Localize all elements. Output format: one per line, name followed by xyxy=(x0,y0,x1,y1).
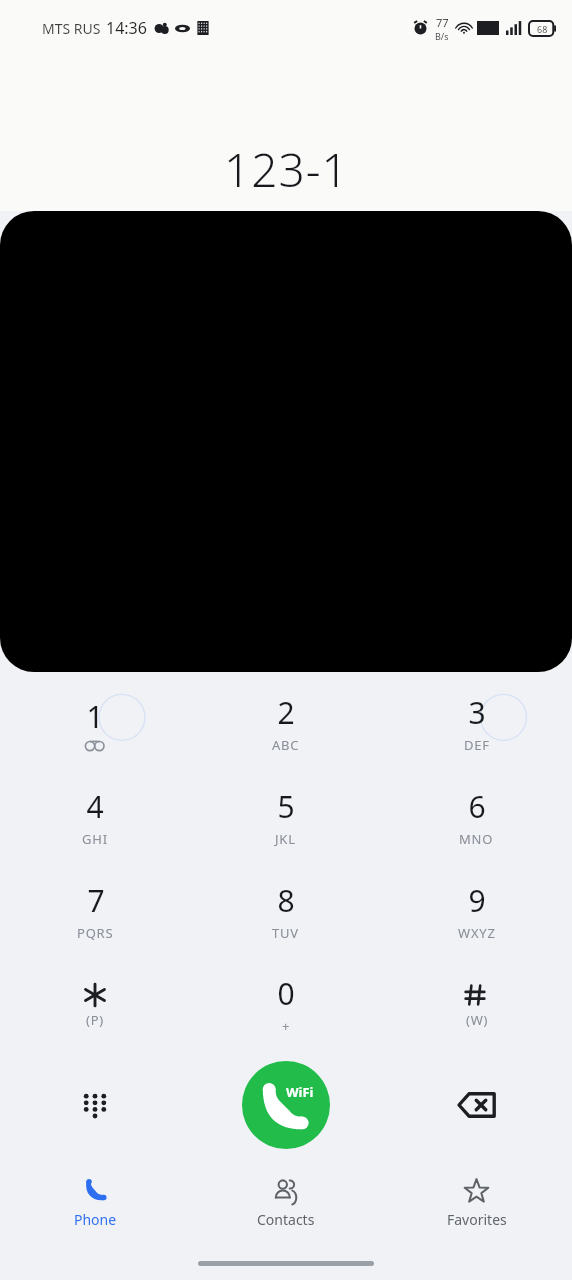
staticText: Phone xyxy=(74,1210,117,1229)
button[interactable]: 6 xyxy=(381,770,572,864)
button[interactable]: 9 xyxy=(381,864,572,957)
staticText: 7 xyxy=(87,880,105,921)
staticText: WiFi xyxy=(286,1083,314,1101)
button[interactable]: 2 xyxy=(190,676,381,770)
staticText: 0 xyxy=(277,973,295,1014)
button[interactable]: 1 xyxy=(0,676,190,770)
button[interactable]: (W) xyxy=(381,957,572,1050)
button[interactable]: 3 xyxy=(381,676,572,770)
staticText: TUV xyxy=(272,924,299,942)
staticText: GHI xyxy=(82,830,108,848)
staticText: + xyxy=(282,1017,291,1035)
button[interactable]: (P) xyxy=(0,957,190,1050)
staticText: 8 xyxy=(277,880,295,921)
staticText: MTS RUS xyxy=(42,19,101,38)
staticText: 5 xyxy=(277,786,295,827)
button[interactable]: Dialpad xyxy=(0,1050,190,1160)
button[interactable]: 7 xyxy=(0,864,190,957)
staticText: 14:36 xyxy=(106,17,147,39)
staticText: Favorites xyxy=(447,1210,507,1229)
button[interactable]: Phone xyxy=(0,1160,190,1246)
button[interactable]: 8 xyxy=(190,864,381,957)
staticText: 1 xyxy=(86,696,104,737)
button[interactable]: Favorites xyxy=(381,1160,572,1246)
staticText: Contacts xyxy=(257,1210,315,1229)
staticText: B/s xyxy=(435,30,449,42)
staticText: (W) xyxy=(466,1011,489,1029)
button[interactable]: 5 xyxy=(190,770,381,864)
staticText: DEF xyxy=(464,736,490,754)
button[interactable] xyxy=(0,211,572,672)
staticText: JKL xyxy=(275,830,296,848)
staticText: (P) xyxy=(86,1011,105,1029)
staticText: PQRS xyxy=(77,924,114,942)
staticText: 2 xyxy=(277,692,295,733)
staticText: WXYZ xyxy=(458,924,496,942)
staticText: 68 xyxy=(537,23,548,35)
button[interactable]: 4 xyxy=(0,770,190,864)
staticText: 4 xyxy=(86,786,104,827)
staticText: 9 xyxy=(468,880,486,921)
button[interactable]: Backspace xyxy=(381,1050,572,1160)
staticText: 6 xyxy=(468,786,486,827)
staticText: MNO xyxy=(459,830,494,848)
staticText: 3 xyxy=(468,692,486,733)
button[interactable]: Contacts xyxy=(190,1160,381,1246)
button[interactable]: 0 xyxy=(190,957,381,1050)
button[interactable]: Call over WiFi xyxy=(242,1061,330,1149)
staticText: 77 xyxy=(436,15,449,30)
staticText: 123-1 xyxy=(224,138,349,201)
staticText: ABC xyxy=(272,736,300,754)
